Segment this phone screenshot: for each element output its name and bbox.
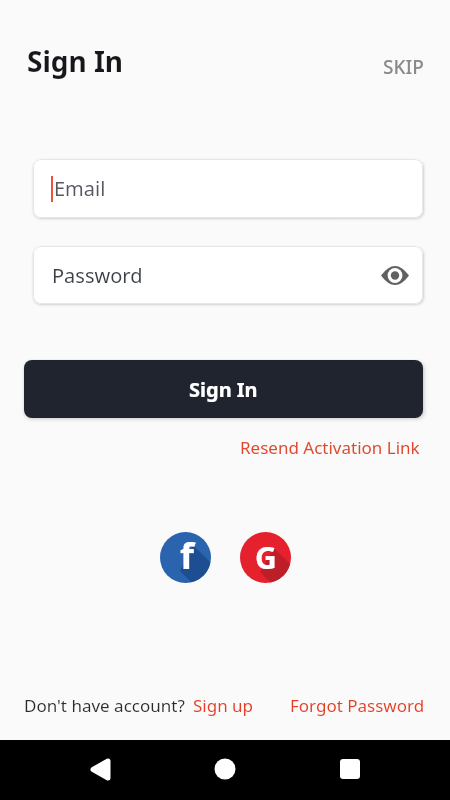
staticText: Email	[54, 175, 106, 202]
button[interactable]: f	[160, 532, 211, 583]
staticText: f	[180, 532, 194, 580]
button[interactable]: Forgot Password	[290, 694, 425, 717]
staticText: Sign up	[193, 694, 254, 717]
staticText: Don't have account?	[24, 694, 185, 717]
staticText: SKIP	[383, 54, 424, 80]
staticText: Forgot Password	[290, 694, 425, 717]
staticText: Sign In	[189, 376, 258, 403]
button[interactable]	[75, 745, 125, 795]
button[interactable]: Sign up	[193, 694, 254, 717]
staticText: Password	[52, 262, 143, 289]
button[interactable]: Password	[33, 246, 423, 304]
button[interactable]: Email	[33, 159, 423, 218]
button[interactable]: Resend Activation Link	[240, 436, 420, 459]
button[interactable]	[200, 745, 250, 795]
button[interactable]	[325, 745, 375, 795]
staticText: Resend Activation Link	[240, 436, 420, 459]
button[interactable]: G	[240, 532, 291, 583]
button[interactable]: Sign In	[24, 360, 423, 418]
staticText: G	[255, 537, 277, 578]
staticText: Sign In	[27, 42, 124, 80]
button[interactable]: SKIP	[377, 48, 430, 86]
